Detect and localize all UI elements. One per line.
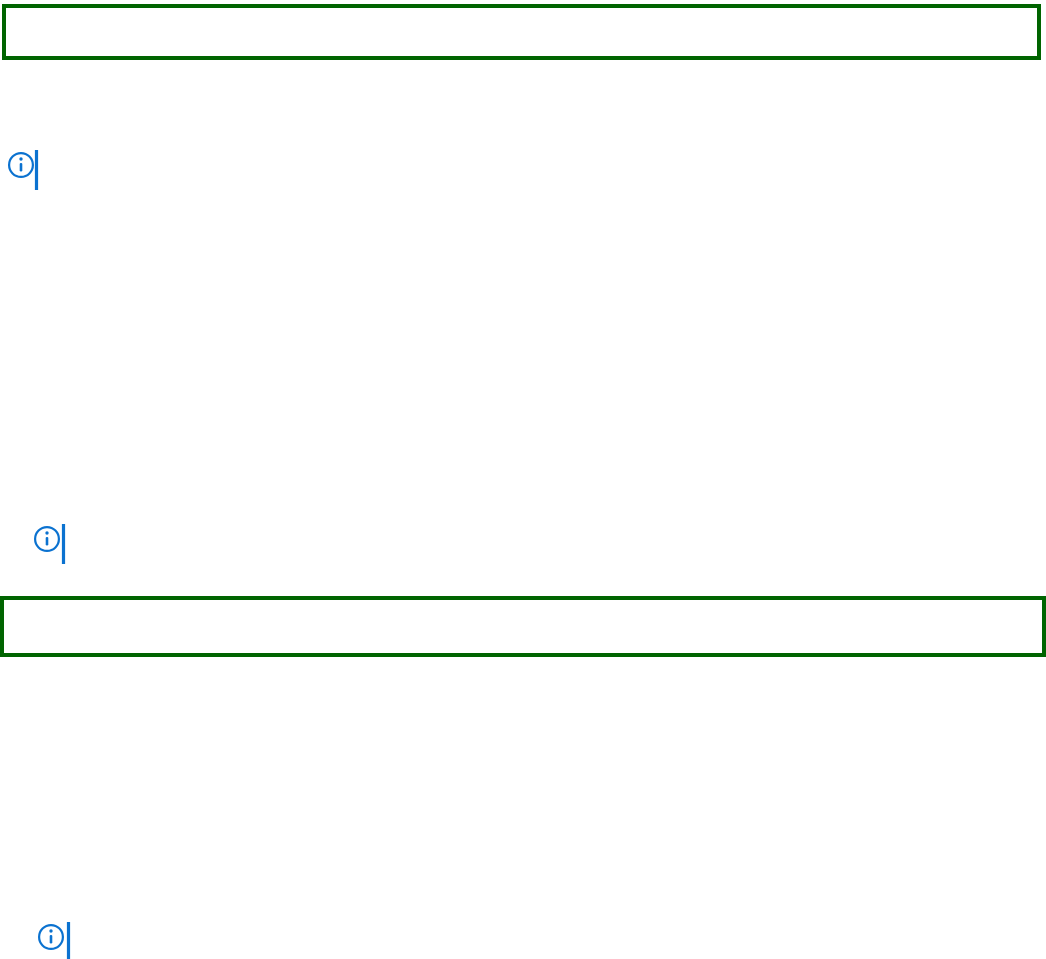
button[interactable]: Information xyxy=(36,920,72,959)
button[interactable]: Information xyxy=(32,522,68,566)
button[interactable]: Information xyxy=(6,148,42,192)
button[interactable]: Text field xyxy=(0,596,1046,657)
button[interactable]: Text field xyxy=(2,4,1041,60)
